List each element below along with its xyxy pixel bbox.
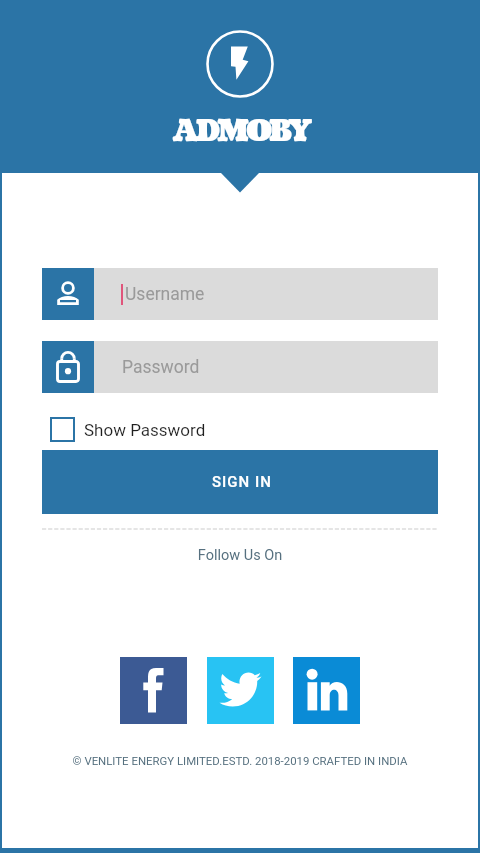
staticText: Password (122, 357, 200, 378)
staticText: Show Password (84, 420, 206, 440)
button[interactable]: Password (42, 341, 438, 393)
button[interactable]: Facebook (120, 657, 187, 724)
staticText: © VENLITE ENERGY LIMITED.ESTD. 2018-2019… (2, 754, 478, 767)
staticText: SIGN IN (212, 473, 272, 491)
button[interactable]: SIGN IN (42, 450, 438, 514)
button[interactable]: LinkedIn (293, 657, 360, 724)
staticText: ADMOBY (172, 111, 309, 152)
button[interactable]: Show Password (50, 417, 206, 442)
staticText: Username (125, 284, 205, 305)
button[interactable]: Twitter (207, 657, 274, 724)
button[interactable]: Username (42, 268, 438, 320)
staticText: Follow Us On (2, 547, 478, 564)
